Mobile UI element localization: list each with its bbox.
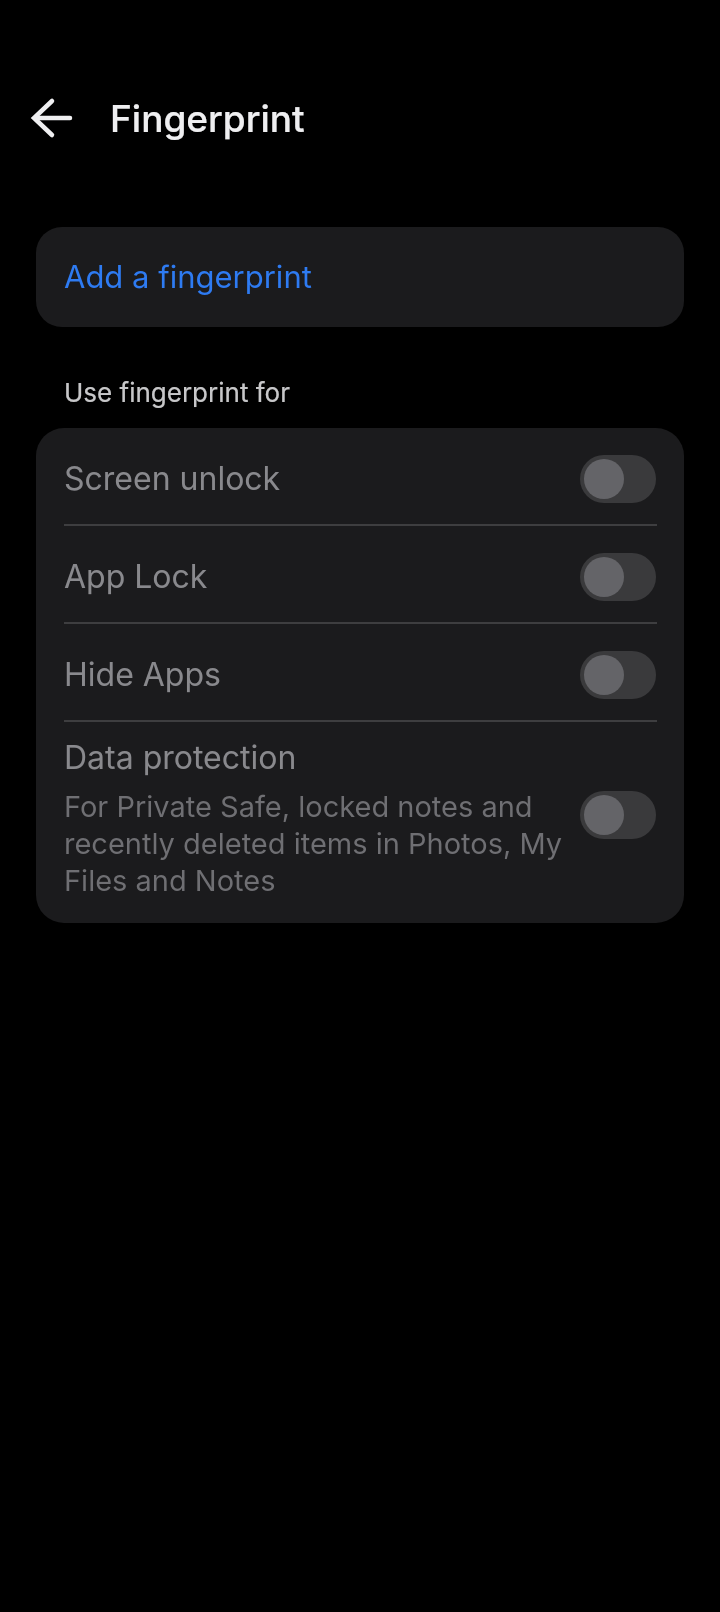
staticText: Data protection: [64, 738, 297, 777]
button[interactable]: App Lock: [36, 526, 684, 622]
staticText: App Lock: [64, 557, 580, 596]
staticText: For Private Safe, locked notes and recen…: [64, 789, 563, 898]
staticText: Use fingerprint for: [64, 377, 290, 408]
button[interactable]: [580, 553, 656, 601]
staticText: Fingerprint: [110, 96, 305, 141]
staticText: Add a fingerprint: [64, 258, 312, 296]
button[interactable]: Data protection: [36, 722, 684, 923]
button[interactable]: [580, 455, 656, 503]
button[interactable]: [580, 651, 656, 699]
staticText: Screen unlock: [64, 459, 580, 498]
button[interactable]: Hide Apps: [36, 624, 684, 720]
staticText: Hide Apps: [64, 655, 580, 694]
button[interactable]: Screen unlock: [36, 428, 684, 524]
button[interactable]: [580, 791, 656, 839]
button[interactable]: [28, 94, 76, 142]
button[interactable]: Add a fingerprint: [36, 227, 684, 327]
